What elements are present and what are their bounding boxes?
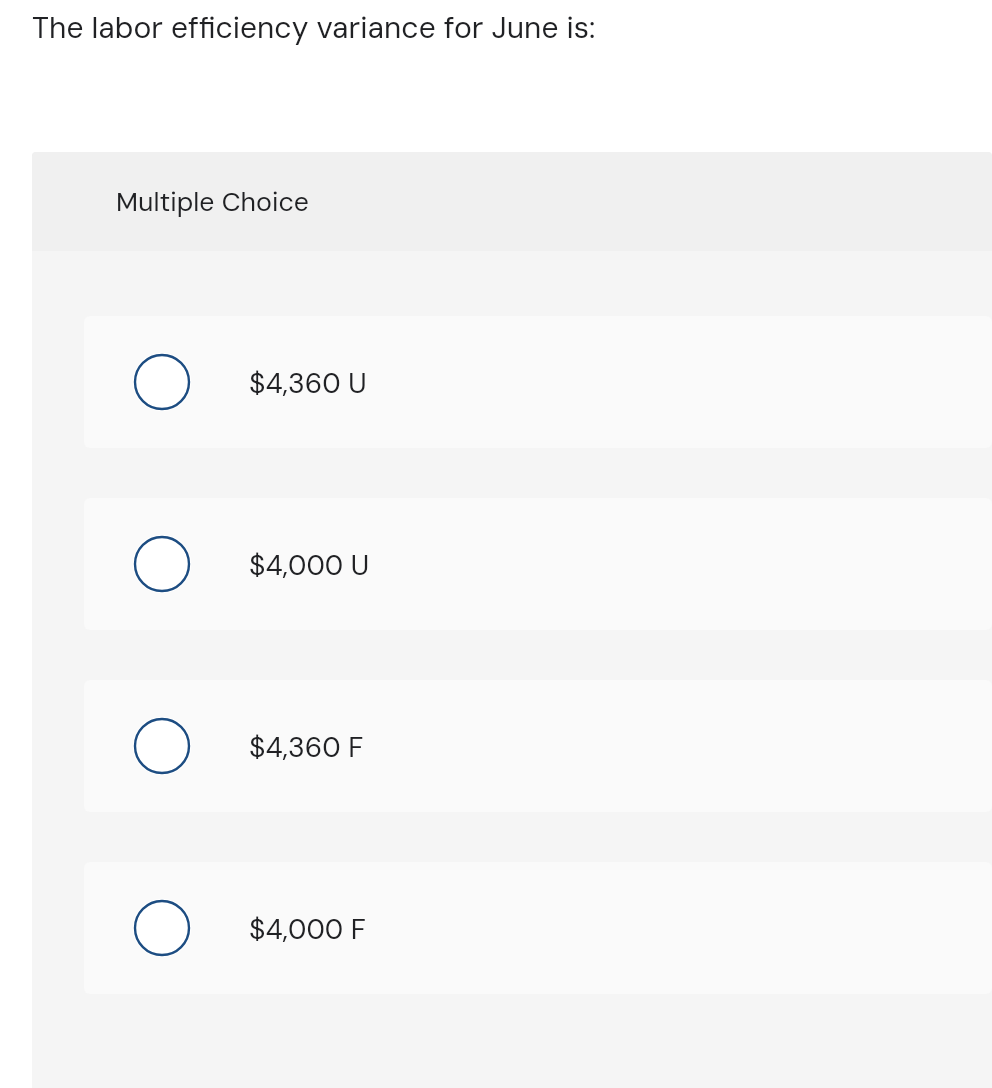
button[interactable]: Select $4,360 F [84, 680, 992, 812]
staticText: $4,000 U [249, 547, 369, 583]
other: Select $4,000 F [133, 899, 191, 957]
staticText: $4,000 F [249, 911, 366, 947]
button[interactable]: Select $4,000 F [84, 862, 992, 994]
staticText: Multiple Choice [116, 185, 309, 220]
other: Select $4,360 U [133, 353, 191, 411]
other: Select $4,000 U [133, 535, 191, 593]
staticText: The labor efficiency variance for June i… [32, 8, 596, 47]
button[interactable]: Select $4,000 U [84, 498, 992, 630]
staticText: $4,360 U [249, 365, 367, 401]
other: Select $4,360 F [133, 717, 191, 775]
button[interactable]: Select $4,360 U [84, 316, 992, 448]
staticText: $4,360 F [249, 729, 364, 765]
